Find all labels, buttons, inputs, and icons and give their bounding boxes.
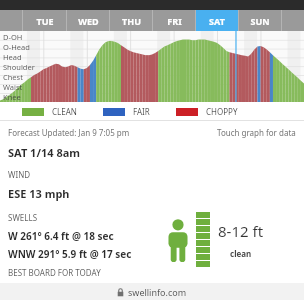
staticText: CLEAN — [52, 106, 77, 117]
staticText: Chest — [3, 72, 23, 82]
button[interactable]: Surf forecast graph — [0, 31, 304, 102]
staticText: SWELLS — [8, 212, 38, 223]
button[interactable]: WED — [67, 10, 109, 31]
staticText: O-Head — [3, 42, 30, 52]
button[interactable]: Touch graph for data — [217, 127, 296, 138]
staticText: BEST BOARD FOR TODAY — [8, 267, 101, 278]
staticText: THU — [122, 15, 141, 27]
staticText: SAT — [209, 15, 225, 27]
staticText: SAT 1/14 8am — [8, 145, 81, 160]
staticText: WNW 291° 5.9 ft @ 17 sec — [8, 247, 132, 261]
button[interactable]: TUE — [23, 10, 66, 31]
staticText: W 261° 6.4 ft @ 18 sec — [8, 229, 114, 243]
button[interactable]: SUN — [239, 10, 281, 31]
button[interactable]: swellinfo.com — [0, 283, 304, 300]
staticText: SUN — [250, 15, 270, 27]
staticText: swellinfo.com — [128, 286, 187, 298]
staticText: clean — [230, 248, 252, 259]
staticText: FRI — [167, 15, 182, 27]
staticText: WIND — [8, 169, 31, 180]
staticText: 8-12 ft — [218, 221, 264, 241]
staticText: Waist — [3, 82, 23, 92]
staticText: D-OH — [3, 32, 23, 42]
staticText: TUE — [36, 15, 54, 27]
button[interactable]: SAT — [196, 10, 238, 31]
button[interactable]: BEST BOARD FOR TODAY — [0, 267, 304, 283]
staticText: Head — [3, 52, 22, 62]
staticText: Shoulder — [3, 62, 35, 72]
staticText: Forecast Updated: Jan 9 7:05 pm — [8, 127, 130, 138]
staticText: Touch graph for data — [217, 127, 296, 138]
button[interactable]: FRI — [153, 10, 195, 31]
staticText: ESE 13 mph — [8, 186, 70, 201]
staticText: Knee — [3, 92, 21, 102]
staticText: CHOPPY — [206, 106, 238, 117]
staticText: FAIR — [133, 106, 150, 117]
staticText: WED — [78, 15, 99, 27]
button[interactable]: THU — [110, 10, 152, 31]
